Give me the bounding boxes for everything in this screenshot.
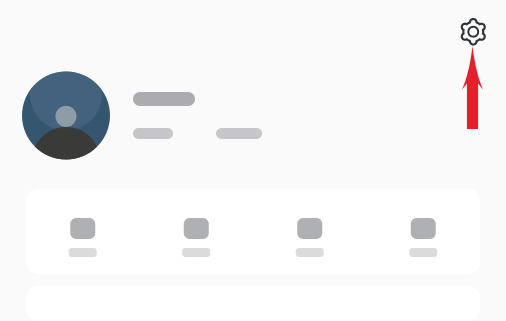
button[interactable]: Quick action xyxy=(26,188,139,274)
button[interactable]: Settings xyxy=(454,13,492,50)
button[interactable]: Quick action xyxy=(139,188,253,274)
button[interactable]: Quick action xyxy=(253,188,366,274)
button[interactable]: Quick action xyxy=(366,188,480,274)
